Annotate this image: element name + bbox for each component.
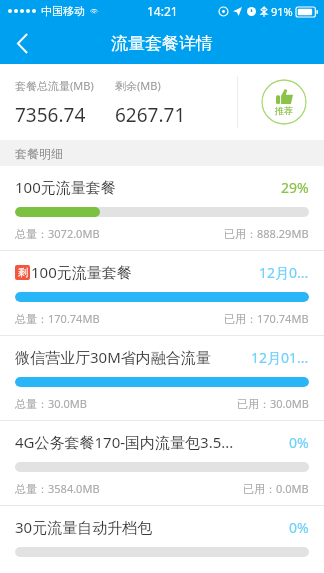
- staticText: 剩: [18, 266, 28, 279]
- staticText: 91%: [271, 4, 293, 19]
- staticText: 0%: [289, 433, 309, 452]
- staticText: 已用：30.0MB: [237, 396, 309, 411]
- staticText: 中国移动: [41, 4, 85, 18]
- staticText: 微信营业厅30M省内融合流量: [15, 347, 211, 367]
- staticText: 总量：30.0MB: [15, 396, 87, 411]
- staticText: 100元流量套餐: [15, 177, 116, 197]
- button[interactable]: Back: [0, 22, 44, 64]
- staticText: 总量：3072.0MB: [15, 226, 100, 241]
- button[interactable]: 30元流量自动升档包: [0, 506, 324, 573]
- staticText: 总量：3584.0MB: [15, 481, 100, 496]
- button[interactable]: 微信营业厅30M省内融合流量: [0, 336, 324, 420]
- staticText: 4G公务套餐170-国内流量包3.5...: [15, 432, 234, 452]
- staticText: 已用：888.29MB: [224, 226, 309, 241]
- staticText: 12月01...: [251, 348, 309, 367]
- staticText: 30元流量自动升档包: [15, 517, 153, 537]
- staticText: 已用：170.74MB: [224, 311, 309, 326]
- staticText: 推荐: [275, 105, 293, 116]
- staticText: 0%: [289, 518, 309, 537]
- button[interactable]: 100元流量套餐: [0, 166, 324, 250]
- button[interactable]: 剩: [0, 251, 324, 335]
- staticText: 14:21: [147, 3, 178, 19]
- staticText: 套餐总流量(MB): [15, 78, 94, 93]
- staticText: 100元流量套餐: [31, 262, 132, 282]
- button[interactable]: 推荐: [261, 79, 307, 125]
- staticText: 已用：0.0MB: [243, 481, 309, 496]
- staticText: 7356.74: [15, 102, 86, 128]
- staticText: 总量：170.74MB: [15, 311, 100, 326]
- button[interactable]: 4G公务套餐170-国内流量包3.5...: [0, 421, 324, 505]
- staticText: 6267.71: [115, 102, 186, 128]
- staticText: 29%: [281, 178, 309, 197]
- staticText: 12月0...: [259, 263, 309, 282]
- staticText: 剩余(MB): [115, 78, 161, 93]
- staticText: 套餐明细: [15, 146, 63, 161]
- staticText: 流量套餐详情: [111, 33, 213, 54]
